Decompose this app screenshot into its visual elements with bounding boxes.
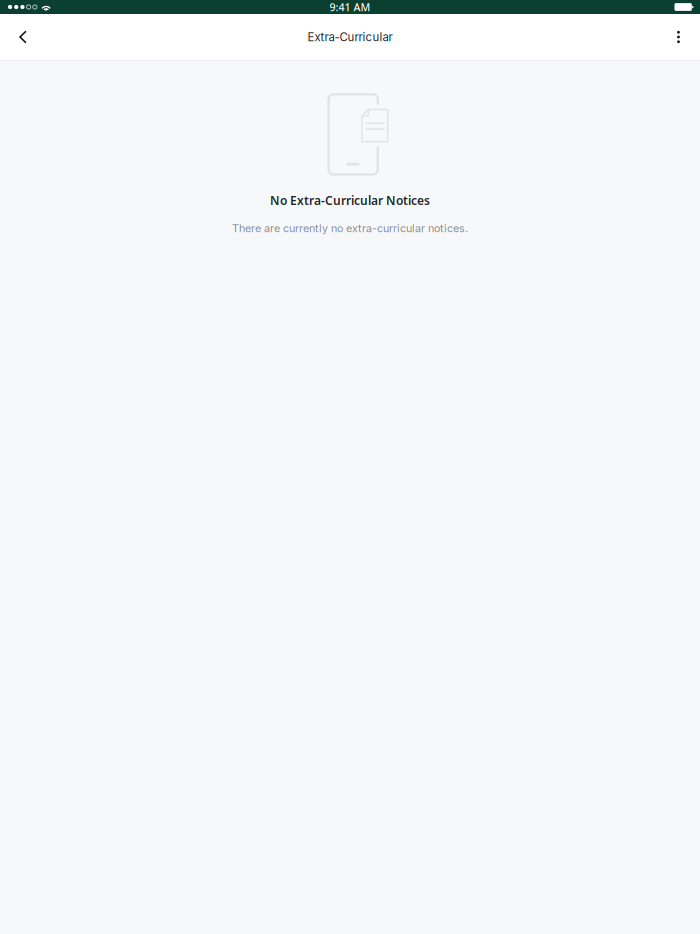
staticText: No Extra-Curricular Notices xyxy=(270,192,430,208)
staticText: Extra-Curricular xyxy=(307,30,392,44)
button[interactable]: More options xyxy=(660,14,696,60)
staticText: There are currently no extra-curricular … xyxy=(232,222,468,235)
staticText: 9:41 AM xyxy=(329,0,370,14)
button[interactable]: Back xyxy=(5,14,41,60)
